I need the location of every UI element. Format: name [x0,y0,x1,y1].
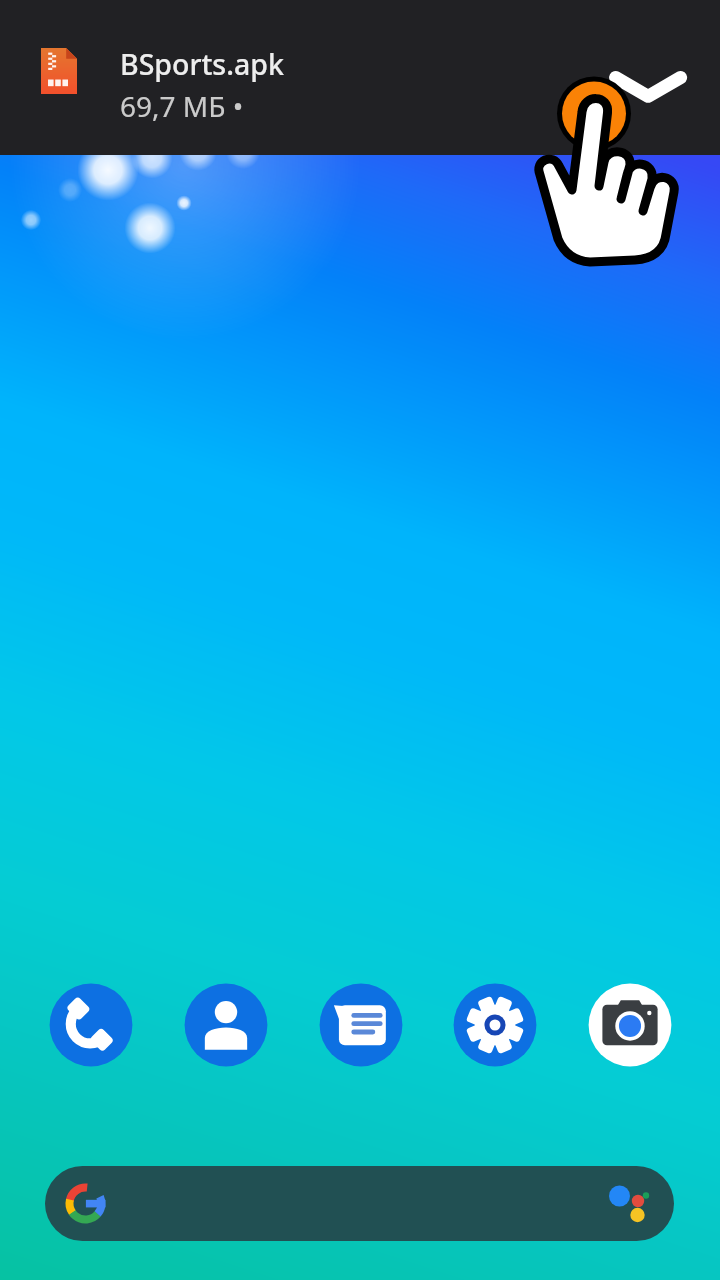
button[interactable]: Contacts [180,979,272,1071]
staticText: 69,7 МБ • [120,87,244,125]
button[interactable]: Search [45,1166,674,1241]
button[interactable]: Settings [449,979,541,1071]
button[interactable]: Expand notification [596,56,700,112]
staticText: BSports.apk [120,45,284,84]
button[interactable]: Phone [45,979,137,1071]
button[interactable]: Camera [584,979,676,1071]
button[interactable]: BSports.apk [0,0,720,155]
button[interactable]: Messages [315,979,407,1071]
